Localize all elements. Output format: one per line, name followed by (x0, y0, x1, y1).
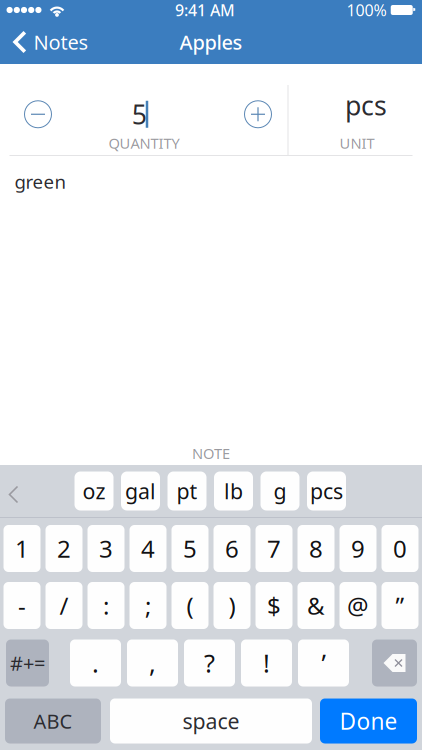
staticText: ) (228, 590, 235, 621)
staticText: @ (347, 590, 369, 621)
button[interactable]: 0 (381, 525, 418, 572)
staticText: 4 (141, 533, 155, 564)
staticText: ; (145, 590, 151, 621)
staticText: g (273, 477, 286, 505)
staticText: 9 (351, 533, 365, 564)
staticText: 6 (225, 533, 239, 564)
staticText: 1 (15, 533, 29, 564)
staticText: & (307, 590, 325, 621)
button[interactable]: Increase quantity (244, 100, 272, 128)
button[interactable]: / (45, 582, 82, 629)
button[interactable]: ? (184, 639, 235, 686)
button[interactable]: #+= (6, 639, 49, 686)
button[interactable]: 2 (45, 525, 82, 572)
staticText: space (182, 707, 239, 735)
button[interactable]: 5 (171, 525, 208, 572)
button[interactable]: 7 (255, 525, 292, 572)
staticText: - (18, 590, 26, 621)
button[interactable]: ) (213, 582, 250, 629)
staticText: 5 (183, 533, 197, 564)
staticText: 8 (309, 533, 323, 564)
button[interactable]: ABC (5, 698, 101, 743)
staticText: 9:41 AM (175, 0, 235, 21)
button[interactable]: 9 (339, 525, 376, 572)
button[interactable]: , (127, 639, 178, 686)
button[interactable]: pt (167, 471, 206, 510)
staticText: #+= (10, 650, 45, 676)
staticText: . (92, 646, 99, 680)
button[interactable]: @ (339, 582, 376, 629)
staticText: green (14, 169, 66, 194)
staticText: 5 (132, 97, 147, 132)
button[interactable]: . (70, 639, 121, 686)
staticText: NOTE (192, 443, 230, 463)
staticText: : (103, 590, 109, 621)
staticText: gal (125, 477, 156, 505)
staticText: Notes (33, 29, 88, 55)
button[interactable]: Done (320, 698, 417, 743)
staticText: 100% (346, 0, 386, 21)
staticText: QUANTITY (108, 133, 179, 153)
staticText: , (149, 646, 156, 680)
button[interactable]: oz (74, 471, 113, 510)
button[interactable]: 3 (87, 525, 124, 572)
button[interactable]: ’ (298, 639, 349, 686)
staticText: ’ (321, 646, 325, 680)
staticText: ABC (33, 708, 72, 734)
staticText: pt (176, 477, 197, 505)
button[interactable]: Previous field (0, 471, 74, 510)
staticText: 7 (267, 533, 281, 564)
button[interactable]: & (297, 582, 334, 629)
button[interactable]: Delete (372, 639, 417, 686)
button[interactable]: - (3, 582, 40, 629)
button[interactable]: : (87, 582, 124, 629)
button[interactable]: ; (129, 582, 166, 629)
button[interactable]: 6 (213, 525, 250, 572)
staticText: Done (339, 706, 397, 736)
staticText: ” (395, 590, 404, 621)
staticText: oz (82, 477, 105, 505)
staticText: $ (267, 590, 281, 621)
staticText: pcs (345, 88, 387, 123)
button[interactable]: space (110, 698, 312, 743)
button[interactable]: $ (255, 582, 292, 629)
button[interactable]: 8 (297, 525, 334, 572)
button[interactable]: lb (214, 471, 253, 510)
staticText: 0 (393, 533, 407, 564)
button[interactable]: g (260, 471, 299, 510)
staticText: ? (204, 646, 215, 680)
button[interactable]: ( (171, 582, 208, 629)
button[interactable]: 4 (129, 525, 166, 572)
staticText: 3 (99, 533, 113, 564)
button[interactable]: Notes (0, 21, 96, 63)
button[interactable]: 1 (3, 525, 40, 572)
staticText: 2 (57, 533, 71, 564)
button[interactable]: Decrease quantity (24, 100, 52, 128)
staticText: Apples (179, 29, 242, 55)
button[interactable]: ! (241, 639, 292, 686)
staticText: ( (186, 590, 193, 621)
staticText: pcs (310, 477, 343, 505)
button[interactable]: pcs (307, 471, 346, 510)
button[interactable]: ” (381, 582, 418, 629)
staticText: ! (263, 646, 270, 680)
staticText: UNIT (339, 133, 374, 153)
staticText: / (59, 590, 68, 621)
staticText: lb (224, 477, 243, 505)
button[interactable]: gal (121, 471, 160, 510)
